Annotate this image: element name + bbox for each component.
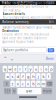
- staticText: z: [12, 81, 14, 86]
- button[interactable]: y: [28, 66, 33, 72]
- staticText: b: [32, 81, 34, 86]
- staticText: Balance summary: [2, 20, 28, 24]
- button[interactable]: i: [39, 66, 43, 72]
- staticText: Your primary trading account is linked a…: [2, 16, 53, 23]
- staticText: f: [22, 74, 23, 79]
- staticText: ⌫: [46, 81, 52, 86]
- button[interactable]: x: [16, 81, 20, 87]
- button[interactable]: w: [8, 66, 12, 72]
- staticText: d: [17, 74, 19, 79]
- staticText: ⌄: [9, 56, 13, 62]
- button[interactable]: z: [10, 81, 15, 87]
- button[interactable]: m: [41, 81, 46, 87]
- staticText: Investment account setup: [17, 0, 37, 7]
- button[interactable]: k: [41, 73, 46, 79]
- staticText: n: [37, 81, 39, 86]
- staticText: w: [8, 66, 11, 72]
- staticText: g: [27, 74, 29, 79]
- button[interactable]: h: [31, 73, 35, 79]
- button[interactable]: s: [10, 73, 15, 79]
- button[interactable]: 123: [4, 88, 11, 94]
- button[interactable]: r: [18, 66, 22, 72]
- button[interactable]: ☺: [12, 88, 16, 94]
- staticText: Edit: [49, 20, 54, 24]
- staticText: Go: [49, 48, 53, 52]
- staticText: e: [14, 66, 16, 72]
- button[interactable]: Go: [48, 48, 54, 52]
- button[interactable]: j: [36, 73, 40, 79]
- button[interactable]: q: [3, 66, 7, 72]
- staticText: Destination: [2, 29, 19, 33]
- staticText: k: [42, 74, 44, 79]
- staticText: u: [35, 66, 37, 72]
- button[interactable]: g: [26, 73, 30, 79]
- staticText: 100%: [46, 1, 54, 5]
- staticText: l: [48, 74, 49, 79]
- staticText: y: [30, 66, 32, 72]
- staticText: return: [43, 89, 52, 93]
- staticText: m: [41, 81, 45, 86]
- staticText: a: [6, 74, 8, 79]
- button[interactable]: n: [36, 81, 40, 87]
- staticText: v: [27, 81, 29, 86]
- button[interactable]: Done: [46, 55, 54, 62]
- staticText: Choose where the money should land once …: [2, 33, 49, 43]
- button[interactable]: b: [31, 81, 35, 87]
- button[interactable]: Previous field: [2, 55, 8, 62]
- staticText: t: [25, 66, 26, 72]
- staticText: Please review the information below care…: [2, 1, 52, 12]
- button[interactable]: e: [13, 66, 17, 72]
- staticText: Explorer portfolio: [3, 48, 28, 52]
- staticText: ⌃: [3, 56, 7, 62]
- staticText: Transfer funds between your linked accou…: [2, 26, 54, 29]
- staticText: i: [40, 66, 41, 72]
- staticText: o: [45, 66, 47, 72]
- staticText: 9:41: [2, 1, 9, 5]
- staticText: c: [22, 81, 24, 86]
- staticText: p: [50, 66, 52, 72]
- button[interactable]: ⌫: [46, 81, 53, 87]
- button[interactable]: p: [49, 66, 53, 72]
- button[interactable]: l: [46, 73, 51, 79]
- staticText: r: [19, 66, 21, 72]
- staticText: Done: [46, 57, 54, 60]
- button[interactable]: a: [5, 73, 10, 79]
- staticText: q: [4, 66, 6, 72]
- button[interactable]: d: [16, 73, 20, 79]
- staticText: ☺: [13, 90, 16, 93]
- staticText: space: [26, 89, 33, 93]
- button[interactable]: Next field: [8, 55, 14, 62]
- staticText: x: [17, 81, 19, 86]
- button[interactable]: f: [21, 73, 25, 79]
- staticText: h: [32, 74, 34, 79]
- button[interactable]: c: [21, 81, 25, 87]
- button[interactable]: o: [44, 66, 48, 72]
- button[interactable]: ⇧: [3, 81, 10, 87]
- button[interactable]: u: [34, 66, 38, 72]
- button[interactable]: v: [26, 81, 30, 87]
- staticText: Account details: [2, 12, 24, 16]
- button[interactable]: t: [23, 66, 28, 72]
- staticText: s: [12, 74, 14, 79]
- staticText: 123: [4, 89, 10, 93]
- staticText: j: [38, 74, 39, 79]
- staticText: ⇧: [5, 81, 8, 86]
- button[interactable]: return: [42, 88, 52, 94]
- button[interactable]: space: [17, 88, 41, 94]
